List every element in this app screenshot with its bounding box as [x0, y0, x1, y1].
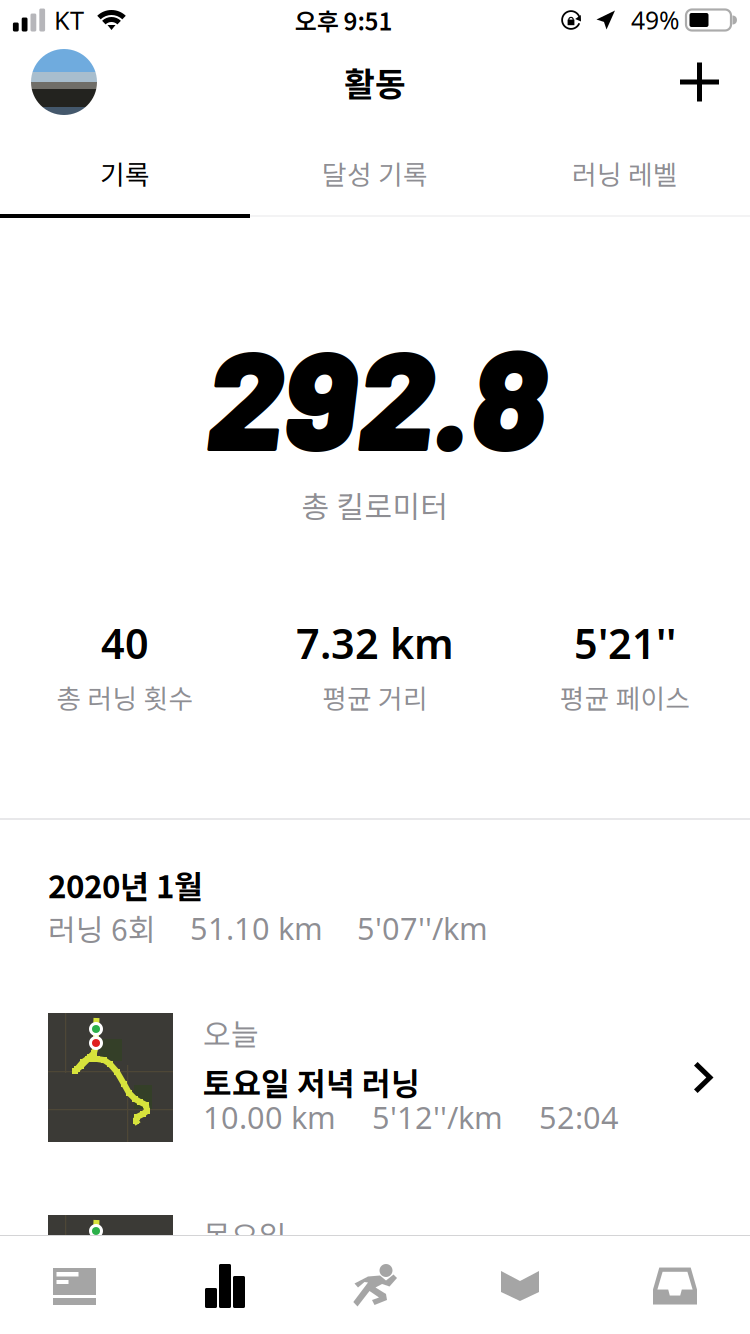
button[interactable]: 피드: [0, 1236, 150, 1334]
button[interactable]: 받은 편지함: [600, 1236, 750, 1334]
staticText: 목요일: [203, 1213, 287, 1256]
staticText: 목요일 저녁 러닝: [203, 1261, 420, 1306]
staticText: 평균 거리: [322, 678, 428, 716]
staticText: 오늘: [203, 1011, 259, 1054]
button[interactable]: 오늘: [0, 1008, 750, 1148]
staticText: 토요일 저녁 러닝: [203, 1059, 420, 1104]
button[interactable]: 러닝 레벨: [500, 124, 750, 214]
button[interactable]: 목요일: [0, 1210, 750, 1334]
staticText: 총 러닝 횟수: [56, 678, 193, 716]
staticText: KT: [54, 3, 84, 37]
button[interactable]: 달성 기록: [250, 124, 500, 214]
staticText: 활동: [344, 58, 406, 106]
staticText: 52:04: [539, 1096, 619, 1138]
staticText: 오후 9:51: [294, 3, 392, 37]
staticText: 292.8: [205, 311, 545, 479]
staticText: 7.32 km: [296, 615, 454, 671]
staticText: 40:32: [521, 1298, 601, 1334]
staticText: 평균 페이스: [559, 678, 690, 716]
staticText: 2020년 1월: [48, 862, 203, 907]
staticText: 달성 기록: [322, 154, 428, 192]
staticText: 러닝 6회: [48, 906, 156, 950]
staticText: 49%: [631, 3, 679, 37]
staticText: 5'07''/km: [357, 907, 488, 949]
button[interactable]: 러닝 시작: [300, 1236, 450, 1334]
button[interactable]: 클럽: [450, 1236, 600, 1334]
staticText: 5'21'': [574, 615, 676, 671]
staticText: 러닝 레벨: [572, 154, 678, 192]
staticText: 5'02''/km: [354, 1298, 485, 1334]
button[interactable]: 프로필: [0, 40, 119, 124]
button[interactable]: 러닝 추가: [664, 40, 735, 124]
staticText: 기록: [100, 154, 150, 192]
staticText: 51.10 km: [190, 907, 323, 949]
staticText: 8.04 km: [203, 1298, 318, 1334]
staticText: 40: [101, 615, 149, 671]
staticText: 10.00 km: [203, 1096, 336, 1138]
staticText: 총 킬로미터: [301, 483, 448, 527]
staticText: 5'12''/km: [372, 1096, 503, 1138]
button[interactable]: 활동: [150, 1236, 300, 1334]
button[interactable]: 기록: [0, 124, 250, 214]
